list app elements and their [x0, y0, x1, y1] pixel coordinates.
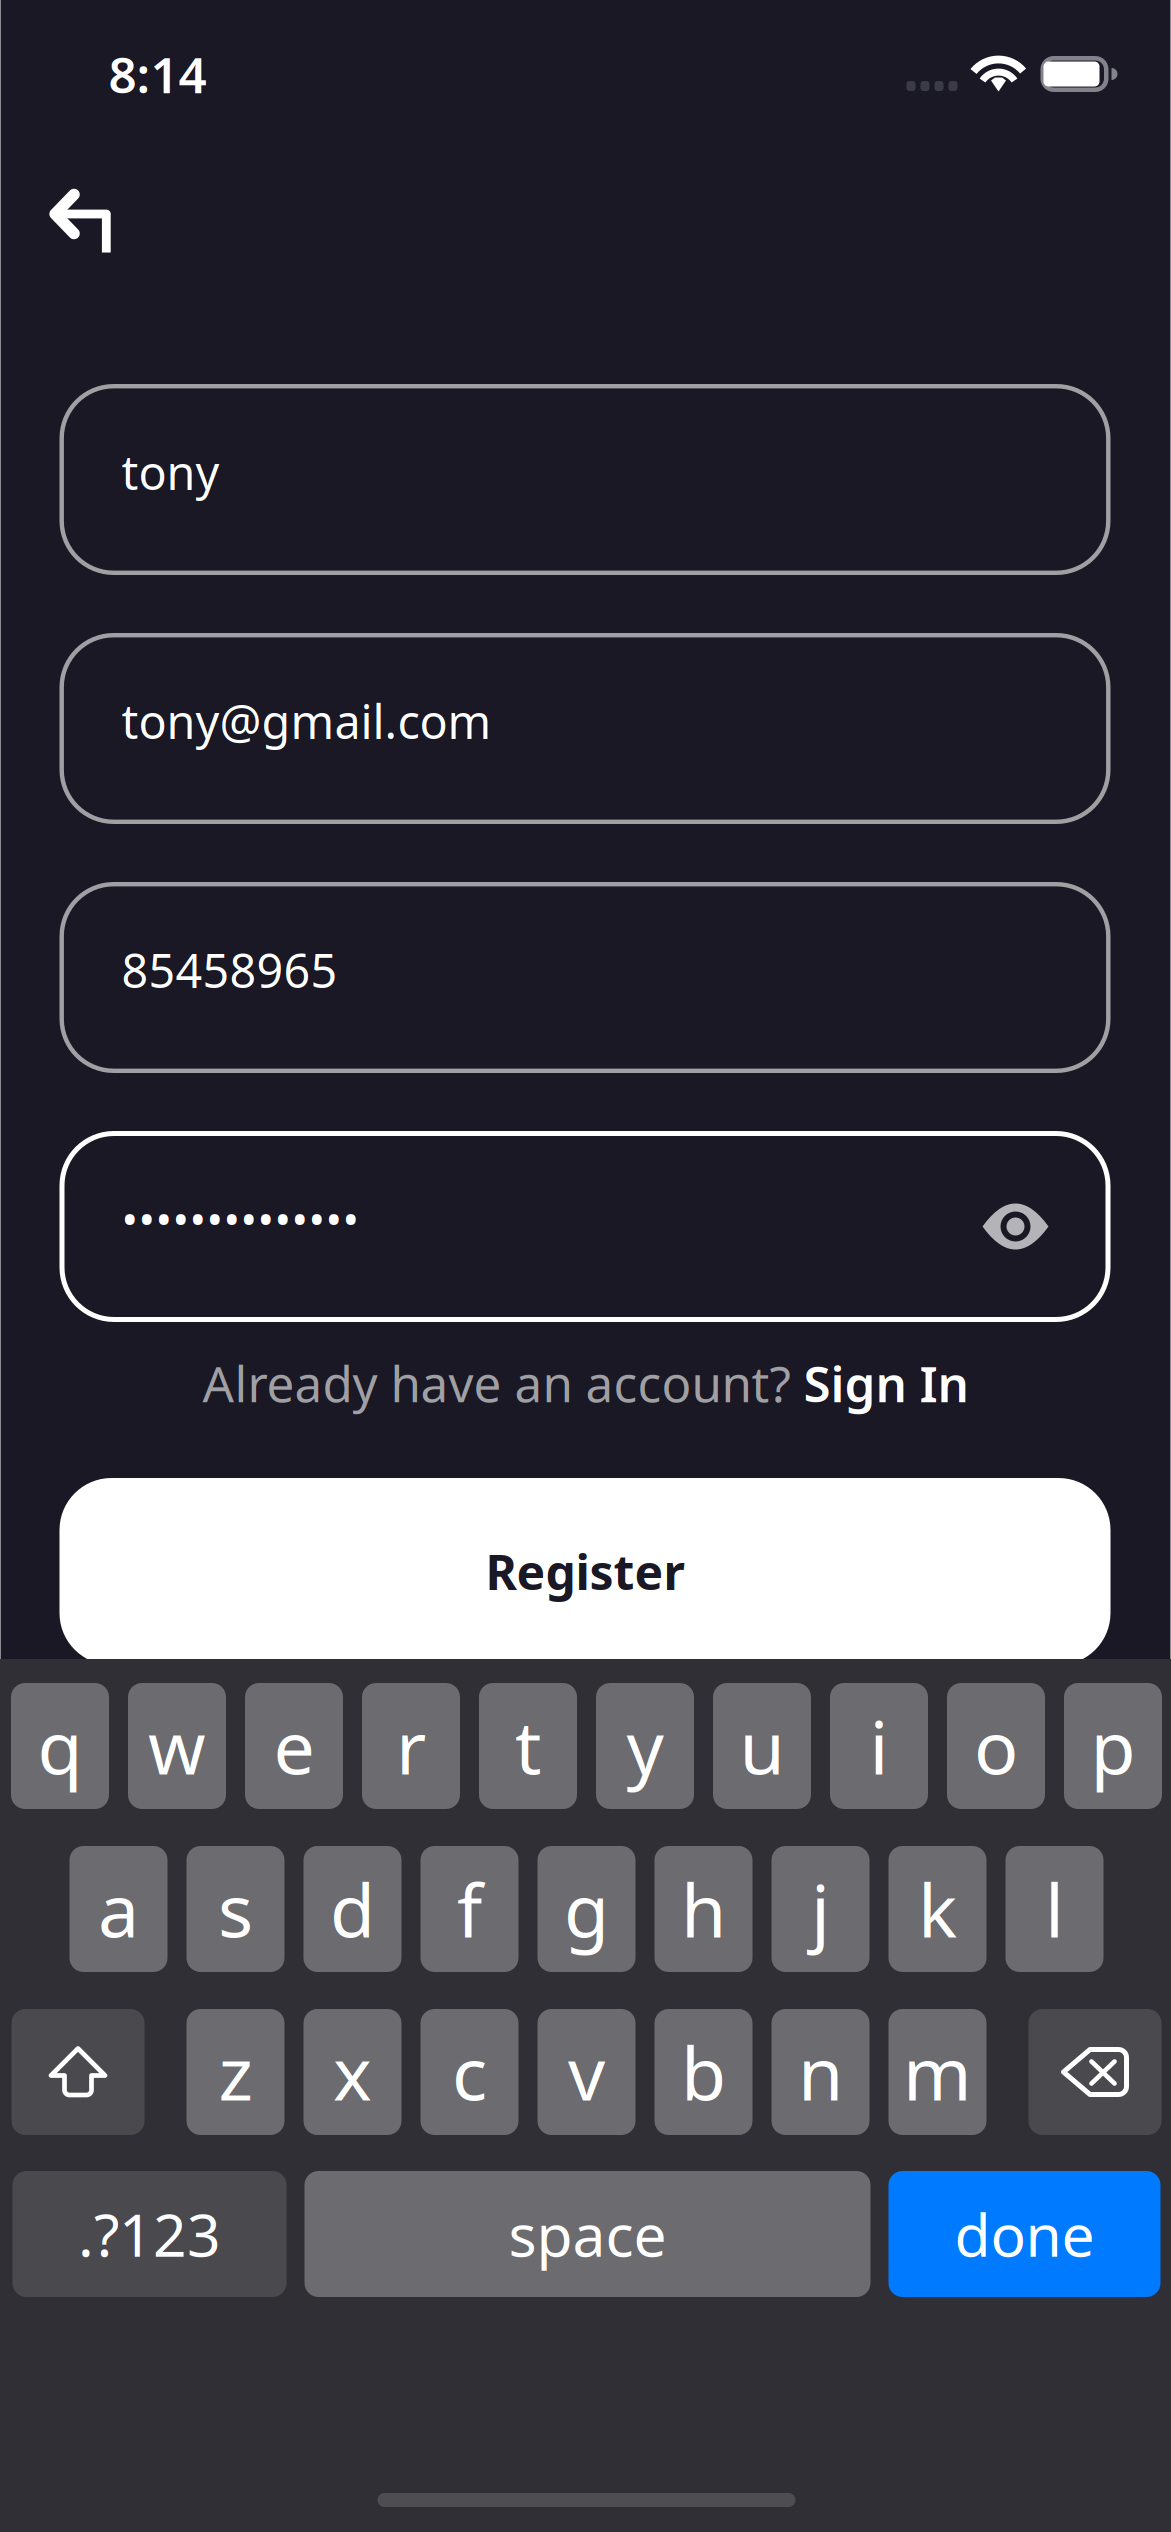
button[interactable]: n [771, 2009, 869, 2135]
staticText: l [1045, 1860, 1064, 1958]
staticText: z [218, 2023, 252, 2121]
button[interactable]: w [128, 1683, 226, 1809]
button[interactable]: Register [59, 1478, 1110, 1665]
staticText: y [626, 1697, 663, 1795]
button[interactable]: done [888, 2171, 1160, 2297]
staticText: r [396, 1697, 426, 1795]
button[interactable]: q [11, 1683, 109, 1809]
staticText: f [457, 1860, 482, 1958]
staticText: 8:14 [108, 41, 206, 107]
button[interactable]: h [654, 1846, 752, 1972]
button[interactable]: space [304, 2171, 870, 2297]
button[interactable]: t [479, 1683, 577, 1809]
staticText: h [681, 1860, 726, 1958]
button[interactable]: Shift [11, 2009, 144, 2135]
button[interactable]: u [713, 1683, 811, 1809]
staticText: g [564, 1860, 609, 1958]
staticText: w [148, 1697, 206, 1795]
button[interactable]: y [596, 1683, 694, 1809]
button[interactable]: v [537, 2009, 635, 2135]
staticText: 85458965 [121, 939, 337, 1001]
staticText: b [681, 2023, 726, 2121]
button[interactable]: z [186, 2009, 284, 2135]
staticText: u [739, 1697, 784, 1795]
staticText: a [98, 1860, 139, 1958]
staticText: i [869, 1697, 888, 1795]
staticText: p [1090, 1697, 1135, 1795]
button[interactable]: g [537, 1846, 635, 1972]
button[interactable]: p [1064, 1683, 1162, 1809]
staticText: q [37, 1697, 82, 1795]
staticText: k [918, 1860, 957, 1958]
staticText: tony@gmail.com [121, 690, 491, 752]
staticText: v [568, 2023, 605, 2121]
staticText: Register [485, 1540, 684, 1603]
staticText: d [330, 1860, 375, 1958]
button[interactable]: l [1005, 1846, 1103, 1972]
button[interactable]: o [947, 1683, 1045, 1809]
staticText: e [273, 1697, 314, 1795]
button[interactable]: r [362, 1683, 460, 1809]
button[interactable]: j [771, 1846, 869, 1972]
staticText: o [974, 1697, 1018, 1795]
staticText: .?123 [78, 2195, 221, 2273]
staticText: space [508, 2195, 666, 2273]
button[interactable]: b [654, 2009, 752, 2135]
button[interactable]: a [69, 1846, 167, 1972]
staticText: m [903, 2023, 972, 2121]
button[interactable]: e [245, 1683, 343, 1809]
staticText: Already have an account? [202, 1350, 803, 1416]
button[interactable]: f [420, 1846, 518, 1972]
staticText: Sign In [803, 1350, 968, 1416]
staticText: x [333, 2023, 372, 2121]
button[interactable]: d [303, 1846, 401, 1972]
button[interactable]: m [888, 2009, 986, 2135]
button[interactable]: Back [0, 148, 144, 283]
staticText: s [218, 1860, 253, 1958]
staticText: done [954, 2195, 1094, 2273]
button[interactable]: i [830, 1683, 928, 1809]
staticText: •••••••••••••• [121, 1190, 359, 1248]
staticText: tony [121, 441, 219, 503]
button[interactable]: k [888, 1846, 986, 1972]
button[interactable]: x [303, 2009, 401, 2135]
staticText: t [515, 1697, 541, 1795]
button[interactable]: .?123 [12, 2171, 286, 2297]
button[interactable]: Already have an account? [0, 1322, 1170, 1478]
button[interactable]: s [186, 1846, 284, 1972]
staticText: c [452, 2023, 487, 2121]
staticText: j [811, 1860, 830, 1958]
staticText: n [798, 2023, 843, 2121]
button[interactable]: c [420, 2009, 518, 2135]
button[interactable]: Backspace [1028, 2009, 1161, 2135]
